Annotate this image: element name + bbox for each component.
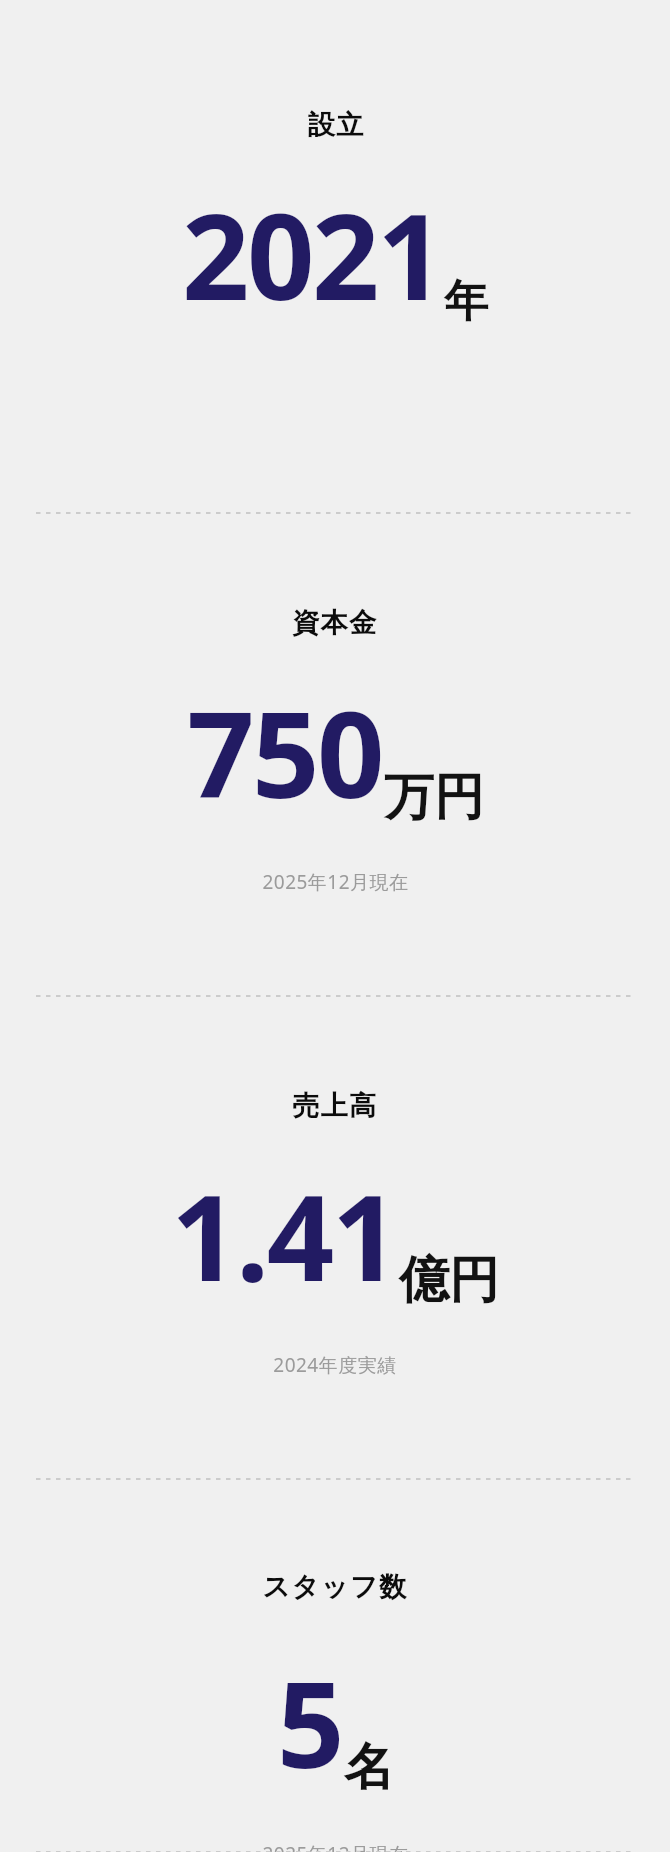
- staticText: 1.41: [171, 1155, 397, 1316]
- staticText: 万円: [384, 766, 484, 829]
- staticText: 2025年12月現在: [262, 1841, 409, 1852]
- staticText: 2021: [182, 174, 442, 335]
- staticText: 名: [344, 1736, 394, 1799]
- staticText: 年: [444, 274, 488, 329]
- staticText: 2024年度実績: [273, 1352, 397, 1378]
- button[interactable]: 資本金: [0, 514, 670, 895]
- staticText: 2025年12月現在: [262, 869, 409, 895]
- button[interactable]: スタッフ数: [0, 1480, 670, 1852]
- staticText: 750: [187, 672, 382, 833]
- staticText: 売上高: [292, 1089, 378, 1123]
- button[interactable]: 設立: [0, 0, 670, 359]
- staticText: スタッフ数: [262, 1570, 408, 1604]
- staticText: 億円: [399, 1249, 499, 1312]
- staticText: 設立: [307, 108, 364, 142]
- button[interactable]: 売上高: [0, 997, 670, 1378]
- staticText: 資本金: [292, 606, 378, 640]
- staticText: 5: [277, 1642, 342, 1803]
